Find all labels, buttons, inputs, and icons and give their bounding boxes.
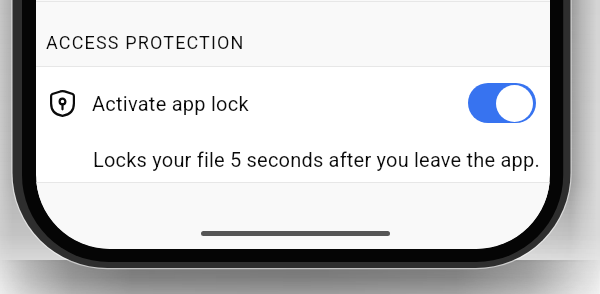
button[interactable] [36,66,550,182]
button[interactable] [36,3,550,65]
staticText: Locks your file 5 seconds after you leav… [93,148,540,171]
button[interactable]: Activate app lock [468,83,536,123]
other: App lock [50,90,75,117]
staticText: Activate app lock [92,92,249,115]
staticText: ACCESS PROTECTION [46,32,245,53]
